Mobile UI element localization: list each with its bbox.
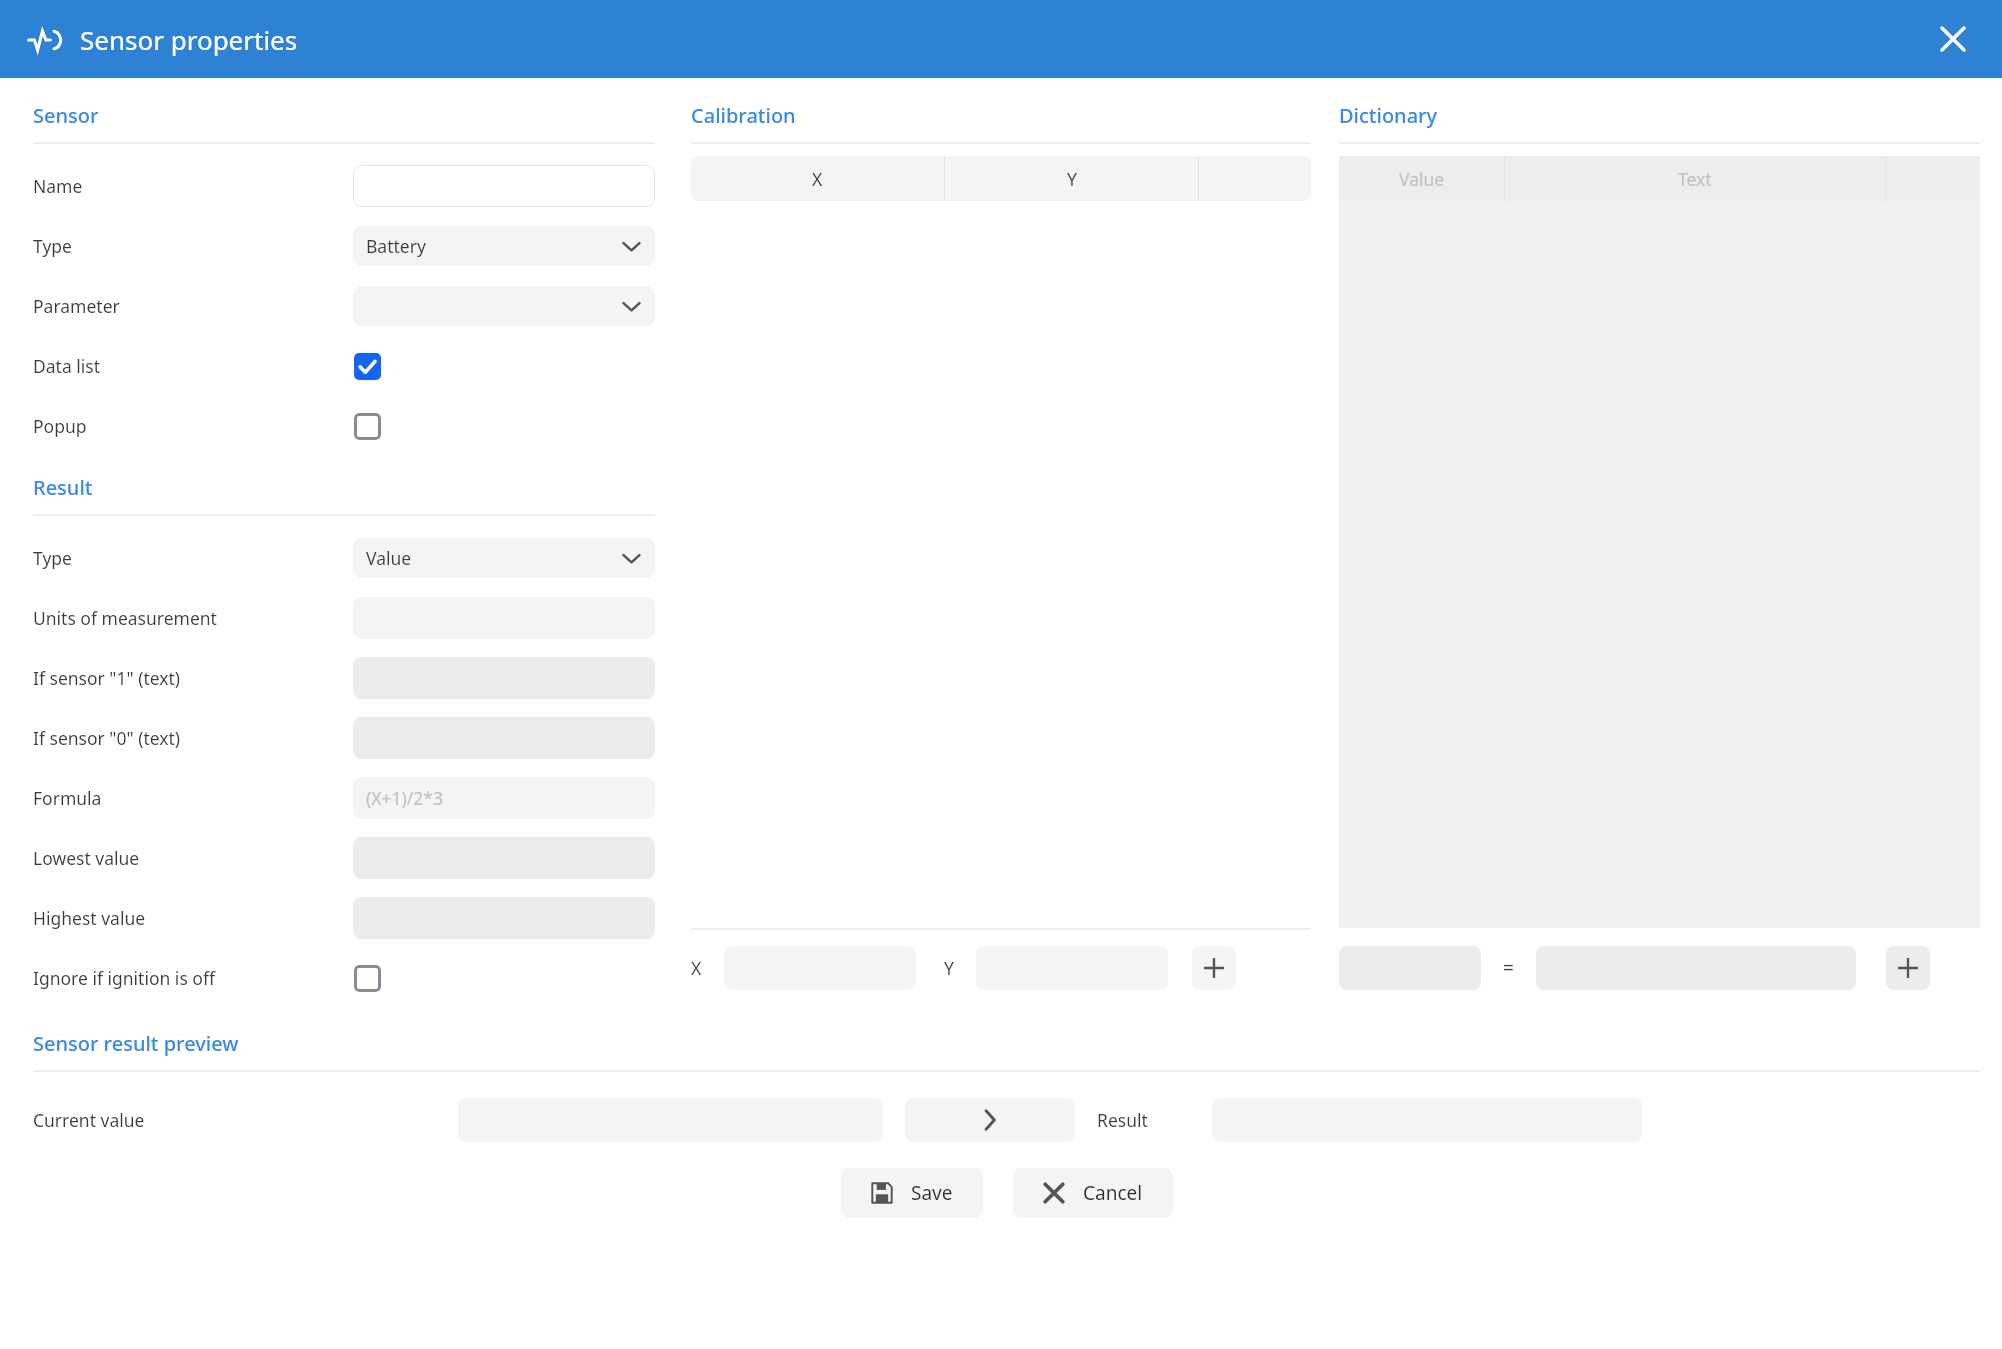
staticText: Result: [1097, 1108, 1148, 1132]
staticText: Sensor result preview: [33, 1030, 239, 1057]
button[interactable]: Close: [1930, 16, 1976, 62]
button[interactable]: Unchecked: [350, 409, 384, 443]
staticText: Type: [33, 234, 353, 258]
staticText: If sensor "1" (text): [33, 666, 353, 690]
staticText: Formula: [33, 786, 353, 810]
staticText: Value: [1399, 167, 1445, 191]
staticText: Y: [1067, 167, 1077, 191]
staticText: Ignore if ignition is off: [33, 966, 353, 990]
button[interactable]: Add: [1192, 946, 1236, 990]
staticText: Value: [366, 546, 412, 570]
staticText: Highest value: [33, 906, 353, 930]
staticText: Sensor: [33, 102, 99, 129]
button[interactable]: Cancel: [1013, 1168, 1173, 1218]
button[interactable]: (X+1)/2*3: [353, 777, 655, 819]
staticText: (X+1)/2*3: [366, 786, 443, 810]
button[interactable]: Save: [841, 1168, 983, 1218]
staticText: Current value: [33, 1108, 458, 1132]
staticText: Y: [944, 956, 954, 980]
staticText: If sensor "0" (text): [33, 726, 353, 750]
staticText: Text: [1678, 167, 1712, 191]
other: Sensor: [28, 24, 60, 56]
button[interactable]: [353, 286, 655, 326]
staticText: Units of measurement: [33, 606, 353, 630]
button[interactable]: Value: [353, 538, 655, 578]
button[interactable]: [353, 165, 655, 207]
staticText: Dictionary: [1339, 102, 1438, 129]
staticText: Data list: [33, 354, 353, 378]
button[interactable]: Unchecked: [350, 961, 384, 995]
staticText: Save: [911, 1180, 953, 1206]
staticText: =: [1503, 955, 1514, 981]
staticText: X: [691, 956, 702, 980]
button[interactable]: Add: [1886, 946, 1930, 990]
staticText: Name: [33, 174, 353, 198]
staticText: Calibration: [691, 102, 796, 129]
staticText: Parameter: [33, 294, 353, 318]
staticText: Popup: [33, 414, 353, 438]
staticText: Battery: [366, 234, 426, 258]
staticText: Lowest value: [33, 846, 353, 870]
button[interactable]: Calculate: [905, 1098, 1075, 1142]
staticText: Result: [33, 474, 93, 501]
button[interactable]: Checked: [350, 349, 384, 383]
staticText: X: [812, 167, 823, 191]
staticText: Type: [33, 546, 353, 570]
button[interactable]: Battery: [353, 226, 655, 266]
staticText: Cancel: [1083, 1180, 1143, 1206]
staticText: Sensor properties: [80, 22, 298, 57]
